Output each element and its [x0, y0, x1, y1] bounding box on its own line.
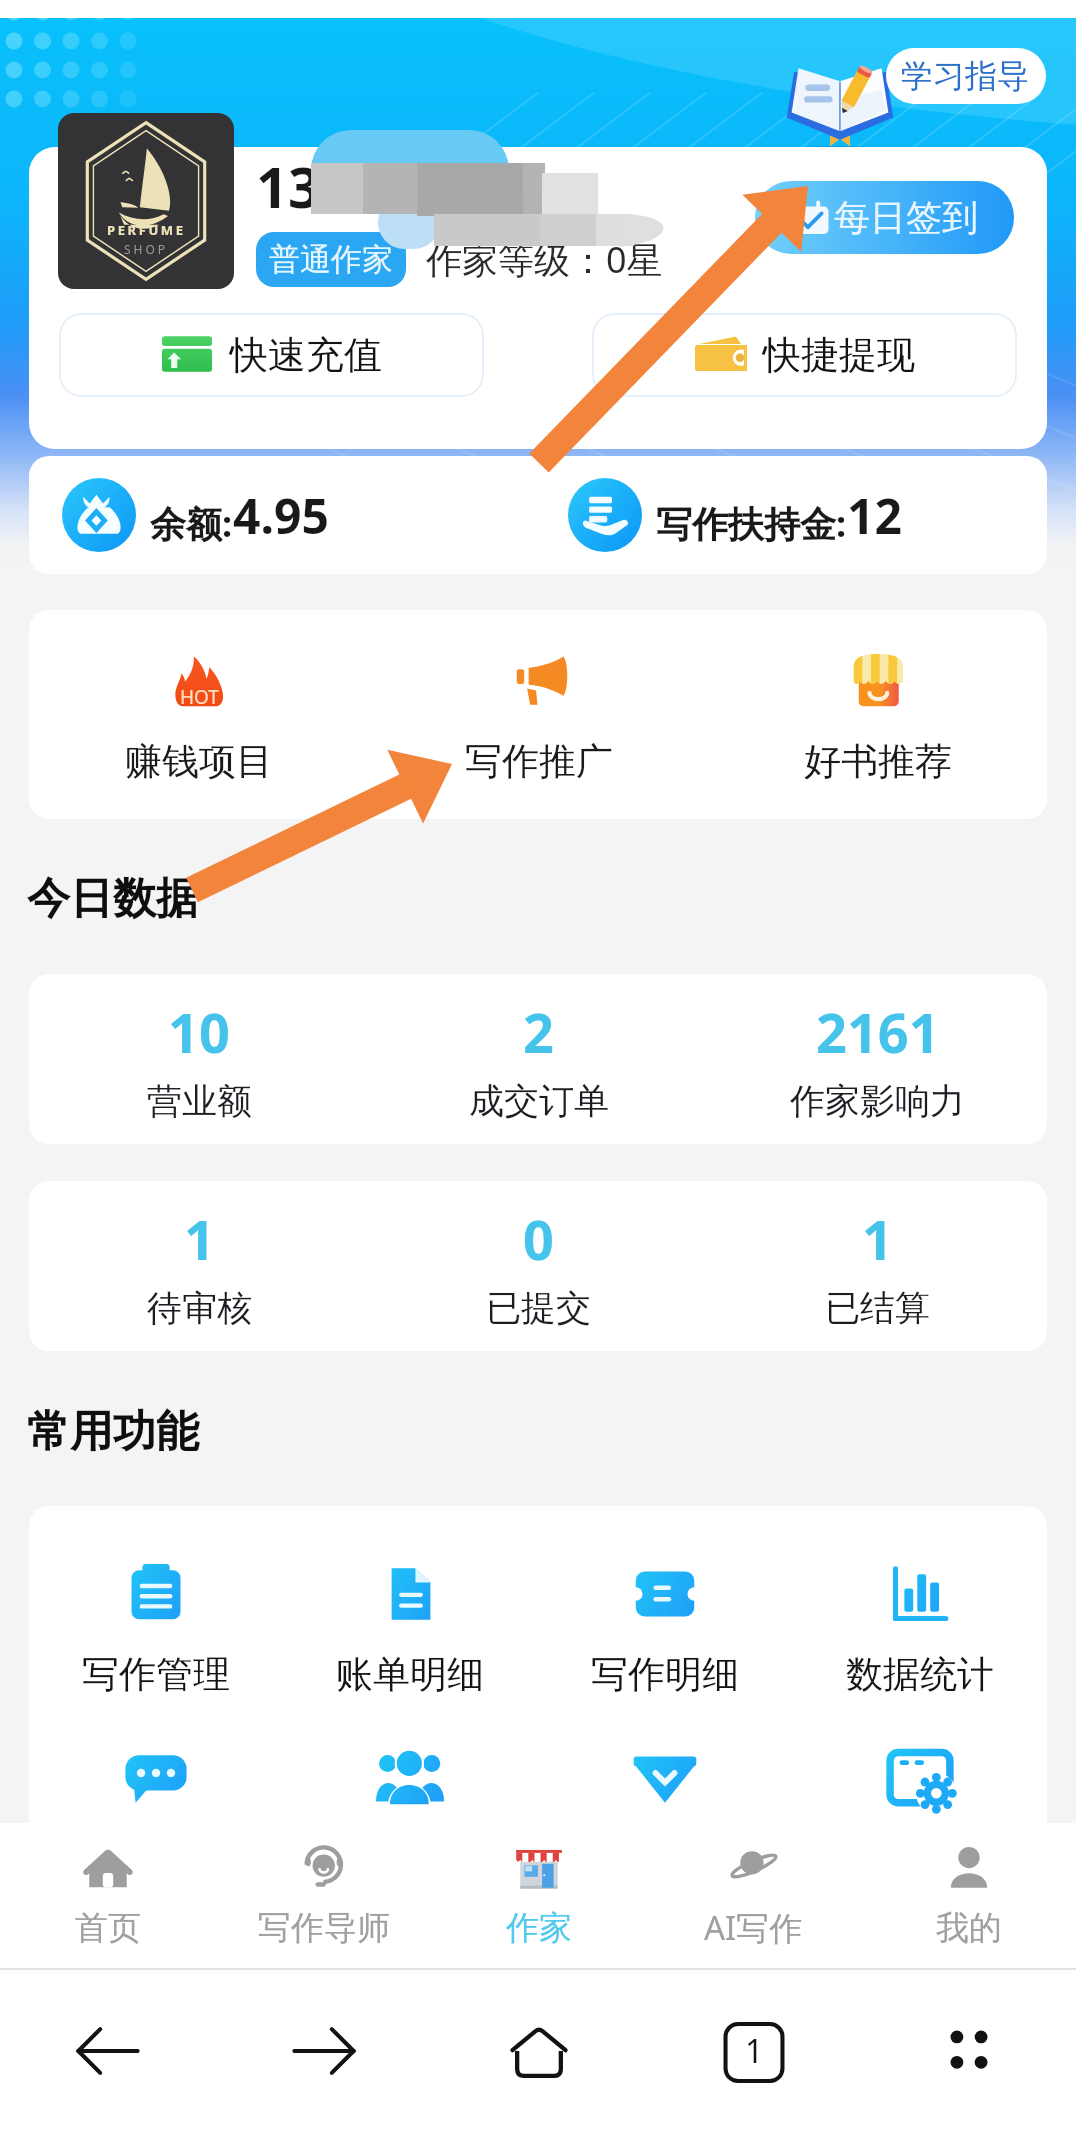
button[interactable]: Avatar: [58, 113, 234, 289]
staticText: 2161: [816, 995, 940, 1069]
button[interactable]: [29, 1743, 283, 1811]
staticText: 首页: [75, 1907, 141, 1949]
staticText: 写作推广: [465, 738, 613, 785]
button[interactable]: 写作扶持金:: [568, 456, 1047, 574]
staticText: 普通作家: [269, 240, 393, 279]
staticText: 写作管理: [82, 1651, 230, 1698]
button[interactable]: 写作明细: [537, 1560, 792, 1698]
staticText: 已提交: [486, 1286, 591, 1330]
button[interactable]: HOT: [29, 610, 369, 819]
staticText: 好书推荐: [804, 738, 952, 785]
staticText: 已结算: [825, 1286, 930, 1330]
button[interactable]: [283, 1743, 537, 1811]
staticText: 写作明细: [591, 1651, 739, 1698]
button[interactable]: Tabs: [646, 1970, 861, 2136]
button[interactable]: 好书推荐: [708, 610, 1047, 819]
button[interactable]: 写作推广: [369, 610, 708, 819]
button[interactable]: Home: [431, 1970, 646, 2136]
button[interactable]: 作家: [431, 1823, 646, 1968]
button[interactable]: 数据统计: [792, 1560, 1047, 1698]
staticText: SHOP: [124, 241, 169, 257]
staticText: 我的: [936, 1907, 1002, 1949]
staticText: 数据统计: [846, 1651, 994, 1698]
button[interactable]: 每日签到: [755, 181, 1014, 254]
button[interactable]: [792, 1743, 1047, 1811]
button[interactable]: 1: [708, 1181, 1047, 1351]
button[interactable]: 快捷提现: [592, 313, 1017, 397]
staticText: 成交订单: [469, 1079, 609, 1123]
staticText: 作家: [506, 1907, 572, 1949]
button[interactable]: More: [861, 1970, 1076, 2136]
staticText: 12: [847, 483, 902, 548]
staticText: 余额:: [150, 499, 233, 548]
staticText: 作家影响力: [790, 1079, 965, 1123]
button[interactable]: AI写作: [646, 1823, 861, 1968]
button[interactable]: 首页: [0, 1823, 216, 1968]
staticText: AI写作: [704, 1905, 803, 1950]
staticText: 今日数据: [27, 872, 199, 926]
button[interactable]: 学习指导: [886, 48, 1046, 104]
staticText: 10: [168, 995, 230, 1069]
button[interactable]: Back: [0, 1970, 216, 2136]
button[interactable]: Forward: [216, 1970, 431, 2136]
button[interactable]: 1: [29, 1181, 369, 1351]
staticText: 2: [523, 995, 554, 1069]
staticText: 快速充值: [230, 331, 382, 379]
staticText: 快捷提现: [763, 331, 915, 379]
button[interactable]: 账单明细: [283, 1560, 537, 1698]
staticText: 作家等级：0星: [426, 235, 663, 284]
button[interactable]: 快速充值: [59, 313, 484, 397]
staticText: 写作导师: [258, 1907, 390, 1949]
staticText: 写作扶持金:: [656, 499, 847, 548]
staticText: 账单明细: [336, 1651, 484, 1698]
button[interactable]: 写作管理: [29, 1560, 283, 1698]
staticText: 1: [184, 1202, 215, 1276]
staticText: 13X: [256, 148, 358, 224]
button[interactable]: 我的: [861, 1823, 1076, 1968]
button[interactable]: 10: [29, 974, 369, 1144]
staticText: PERFUME: [107, 221, 186, 239]
button[interactable]: 余额:: [62, 456, 538, 574]
staticText: 4.95: [233, 483, 329, 548]
button[interactable]: 0: [369, 1181, 708, 1351]
staticText: 待审核: [147, 1286, 252, 1330]
staticText: 营业额: [147, 1079, 252, 1123]
staticText: 0: [523, 1202, 554, 1276]
staticText: 1: [862, 1202, 893, 1276]
staticText: 赚钱项目: [125, 738, 273, 785]
button[interactable]: 2: [369, 974, 708, 1144]
button[interactable]: 写作导师: [216, 1823, 431, 1968]
staticText: HOT: [180, 684, 219, 710]
staticText: 常用功能: [27, 1405, 199, 1459]
button[interactable]: [537, 1743, 792, 1811]
staticText: 每日签到: [834, 195, 978, 240]
staticText: 学习指导: [901, 56, 1029, 96]
button[interactable]: 2161: [708, 974, 1047, 1144]
staticText: 1: [745, 2029, 764, 2073]
